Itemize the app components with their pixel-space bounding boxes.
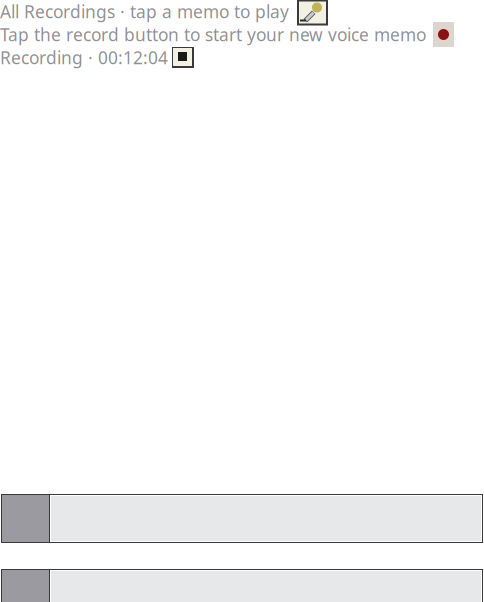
button[interactable]: Stop: [172, 47, 194, 68]
button[interactable]: Microphone input: [297, 0, 328, 25]
button[interactable]: New Recording 1, today, 42 seconds: [1, 494, 483, 543]
button[interactable]: New Recording 2, yesterday, 2 minutes 15…: [1, 569, 483, 602]
button[interactable]: Record: [433, 22, 454, 47]
staticText: Recording · 00:12:04: [0, 46, 173, 69]
staticText: All Recordings · tap a memo to play: [0, 0, 299, 23]
staticText: Tap the record button to start your new …: [0, 23, 436, 46]
